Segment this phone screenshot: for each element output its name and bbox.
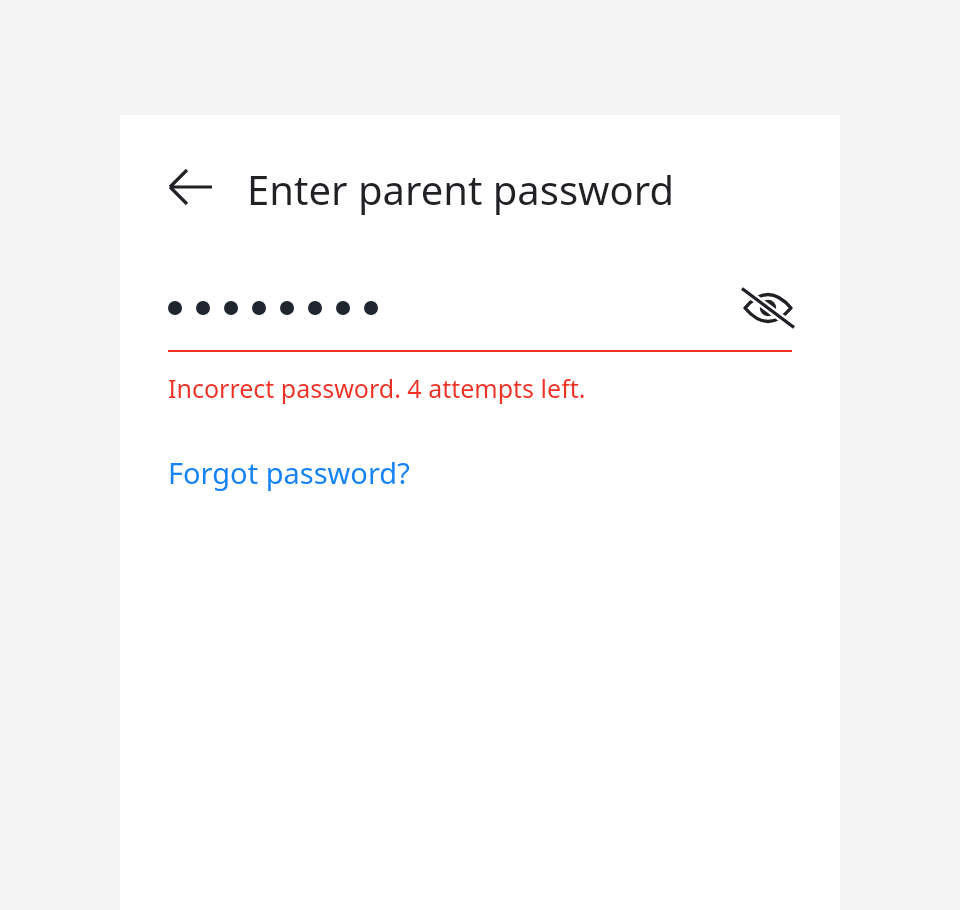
- button[interactable]: Back: [168, 157, 228, 217]
- button[interactable]: Show password: [740, 280, 796, 336]
- button[interactable]: Forgot password?: [168, 453, 410, 492]
- staticText: Forgot password?: [168, 453, 410, 492]
- staticText: Enter parent password: [247, 162, 675, 216]
- button[interactable]: [168, 291, 792, 325]
- staticText: Incorrect password. 4 attempts left.: [168, 371, 586, 405]
